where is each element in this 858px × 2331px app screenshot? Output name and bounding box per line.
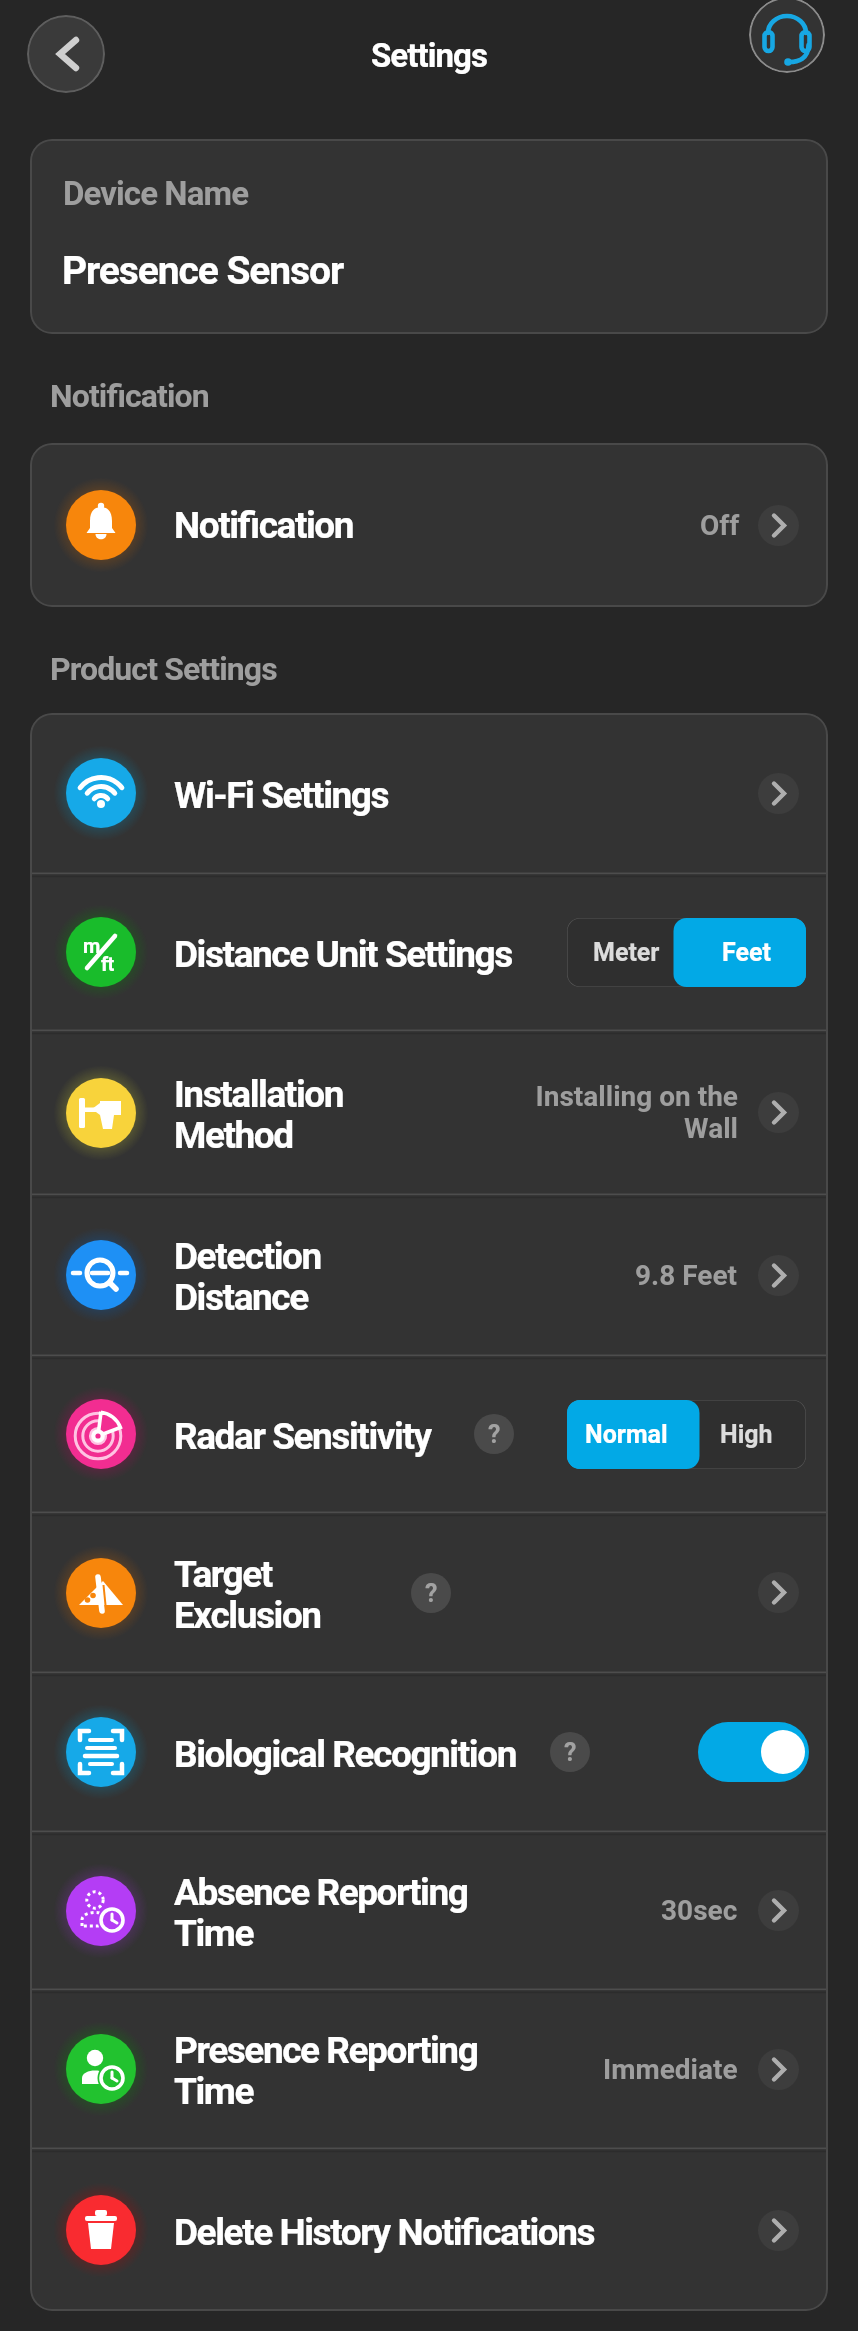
staticText: Installing on the Wall: [523, 1080, 738, 1145]
staticText: Notification: [50, 377, 209, 415]
button[interactable]: Wi-Fi Settings: [30, 713, 828, 873]
button[interactable]: Help: [411, 1573, 451, 1613]
button[interactable]: Feet: [686, 918, 806, 987]
staticText: Device Name: [63, 174, 249, 213]
staticText: Settings: [371, 36, 488, 75]
button[interactable]: m: [30, 874, 828, 1030]
staticText: Immediate: [603, 2053, 738, 2086]
staticText: Product Settings: [50, 650, 277, 688]
button[interactable]: Radar Sensitivity: [30, 1356, 828, 1512]
button[interactable]: Biological Recognition: [698, 1722, 809, 1782]
button[interactable]: Notification: [30, 443, 828, 607]
button[interactable]: Device Name: [30, 139, 828, 334]
button[interactable]: High: [686, 1400, 806, 1469]
staticText: Notification: [174, 504, 354, 547]
button[interactable]: Presence Reporting Time: [30, 1990, 828, 2148]
staticText: ?: [488, 1420, 500, 1449]
staticText: ?: [564, 1738, 576, 1767]
button[interactable]: Help: [550, 1732, 590, 1772]
staticText: Presence Reporting Time: [174, 2029, 478, 2113]
staticText: m: [83, 934, 100, 957]
staticText: Off: [700, 509, 740, 542]
staticText: Absence Reporting Time: [174, 1871, 468, 1955]
staticText: Normal: [585, 1420, 668, 1449]
button[interactable]: Back: [27, 15, 105, 93]
button[interactable]: Installation Method: [30, 1031, 828, 1194]
staticText: Feet: [722, 938, 771, 967]
staticText: Target Exclusion: [174, 1553, 321, 1637]
staticText: 30sec: [661, 1894, 738, 1927]
staticText: ?: [425, 1579, 437, 1608]
staticText: Biological Recognition: [174, 1733, 516, 1776]
button[interactable]: Absence Reporting Time: [30, 1832, 828, 1989]
staticText: High: [720, 1420, 773, 1449]
button[interactable]: Customer support: [749, 0, 825, 73]
staticText: 9.8 Feet: [635, 1259, 738, 1292]
button[interactable]: Target Exclusion: [30, 1513, 828, 1672]
staticText: Detection Distance: [174, 1235, 321, 1319]
button[interactable]: Detection Distance: [30, 1195, 828, 1355]
button[interactable]: Biological Recognition: [30, 1673, 828, 1831]
button[interactable]: Meter: [567, 918, 686, 987]
staticText: Distance Unit Settings: [174, 933, 512, 976]
button[interactable]: Help: [474, 1414, 514, 1454]
staticText: Delete History Notifications: [174, 2211, 595, 2254]
button[interactable]: Normal: [567, 1400, 686, 1469]
staticText: ft: [101, 952, 114, 975]
staticText: Installation Method: [174, 1073, 344, 1157]
button[interactable]: Delete History Notifications: [30, 2149, 828, 2311]
staticText: Wi-Fi Settings: [174, 774, 389, 817]
staticText: Presence Sensor: [62, 248, 344, 294]
staticText: Meter: [593, 938, 660, 967]
staticText: Radar Sensitivity: [174, 1415, 431, 1458]
